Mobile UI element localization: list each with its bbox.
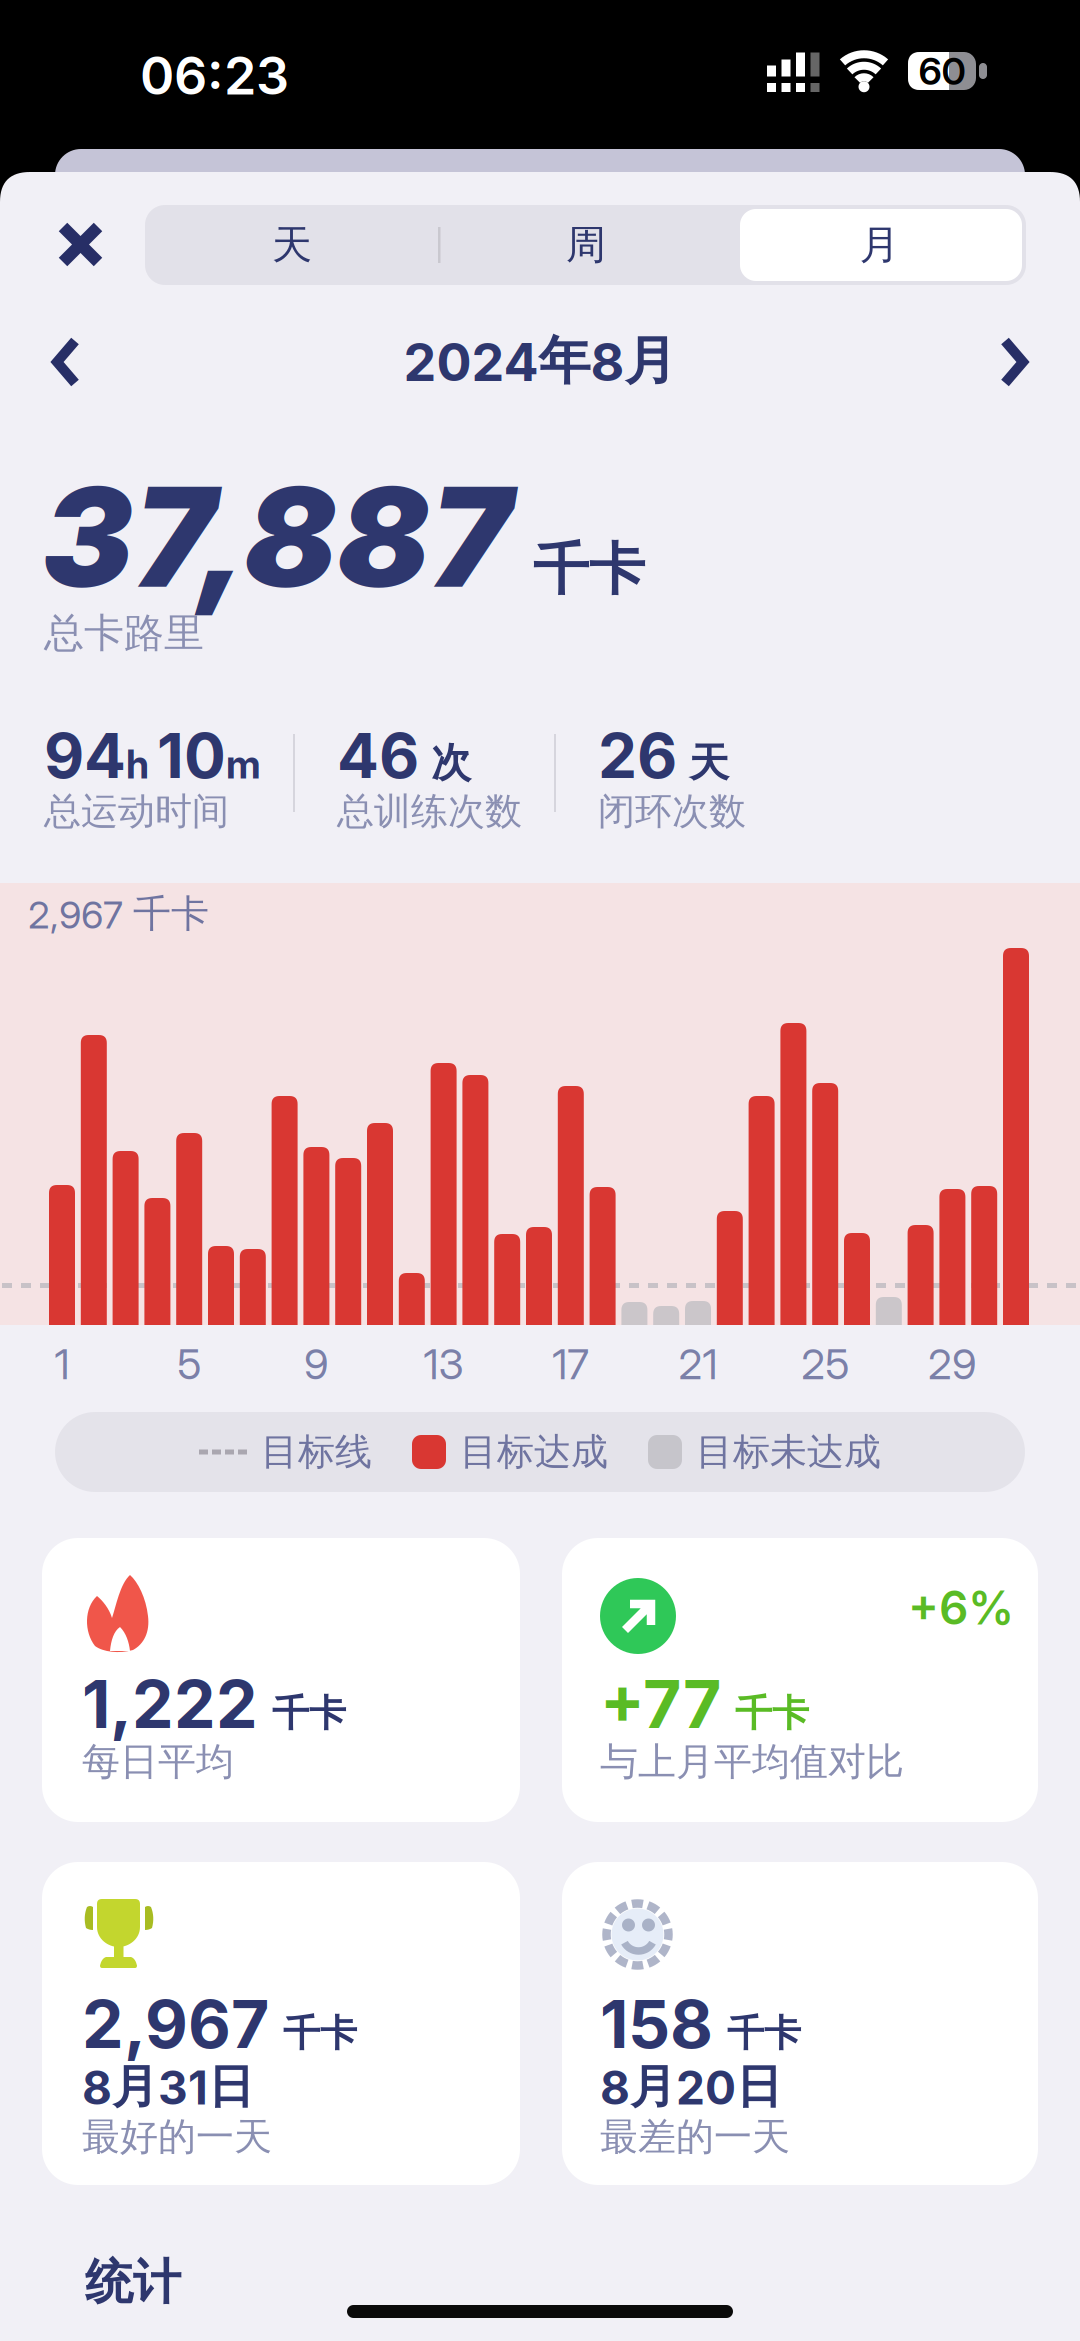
staticText: 每日平均 [82,1738,234,1786]
staticText: 千卡 [283,2010,357,2057]
staticText: 60 [918,48,965,94]
button[interactable]: Previous month [52,336,80,388]
staticText: 8月31日 [82,2058,254,2116]
staticText: 总运动时间 [44,788,229,835]
staticText: 总训练次数 [337,788,522,835]
staticText: 13 [424,1339,464,1389]
staticText: 总卡路里 [44,608,204,658]
staticText: 17 [552,1339,589,1389]
staticText: 1,222 [82,1664,258,1744]
staticText: 5 [177,1339,201,1389]
staticText: 最差的一天 [600,2113,790,2161]
staticText: 06:23 [140,44,289,107]
staticText: 千卡 [272,1690,346,1737]
staticText: 千卡 [533,534,645,605]
staticText: 9 [304,1339,329,1389]
staticText: 1 [54,1339,69,1389]
staticText: 26 [598,718,677,793]
staticText: 37,887 [42,454,511,620]
staticText: 25 [801,1339,849,1389]
staticText: 统计 [85,2252,181,2312]
staticText: 158 [600,1984,713,2064]
staticText: 21 [678,1339,717,1389]
staticText: 10 [157,718,226,793]
staticText: 最好的一天 [82,2113,272,2161]
staticText: 94 [44,718,126,793]
staticText: 2,967 千卡 [28,890,209,938]
staticText: 8月20日 [600,2058,782,2116]
staticText: 目标未达成 [696,1429,881,1475]
staticText: 次 [419,738,471,788]
button[interactable]: 月 [733,205,1026,285]
staticText: 目标达成 [460,1429,608,1475]
staticText: 闭环次数 [598,788,746,835]
button[interactable]: 天 [145,205,439,285]
staticText: 2024年8月 [403,328,676,394]
staticText: 千卡 [727,2010,801,2057]
staticText: 2,967 [82,1984,269,2064]
staticText: +77 [600,1664,721,1744]
staticText: 周 [566,220,606,270]
staticText: +6% [908,1580,1014,1636]
staticText: 天 [677,738,729,788]
button[interactable]: 周 [439,205,733,285]
staticText: 月 [859,220,899,270]
staticText: 29 [928,1339,977,1389]
staticText: 目标线 [261,1429,372,1475]
staticText: 46 [337,718,419,793]
button[interactable]: Close [57,221,104,268]
staticText: 与上月平均值对比 [600,1738,904,1786]
button[interactable]: Next month [1000,336,1028,388]
staticText: m [226,741,261,788]
staticText: h [126,741,157,788]
staticText: 千卡 [735,1690,809,1737]
staticText: 天 [272,220,312,270]
